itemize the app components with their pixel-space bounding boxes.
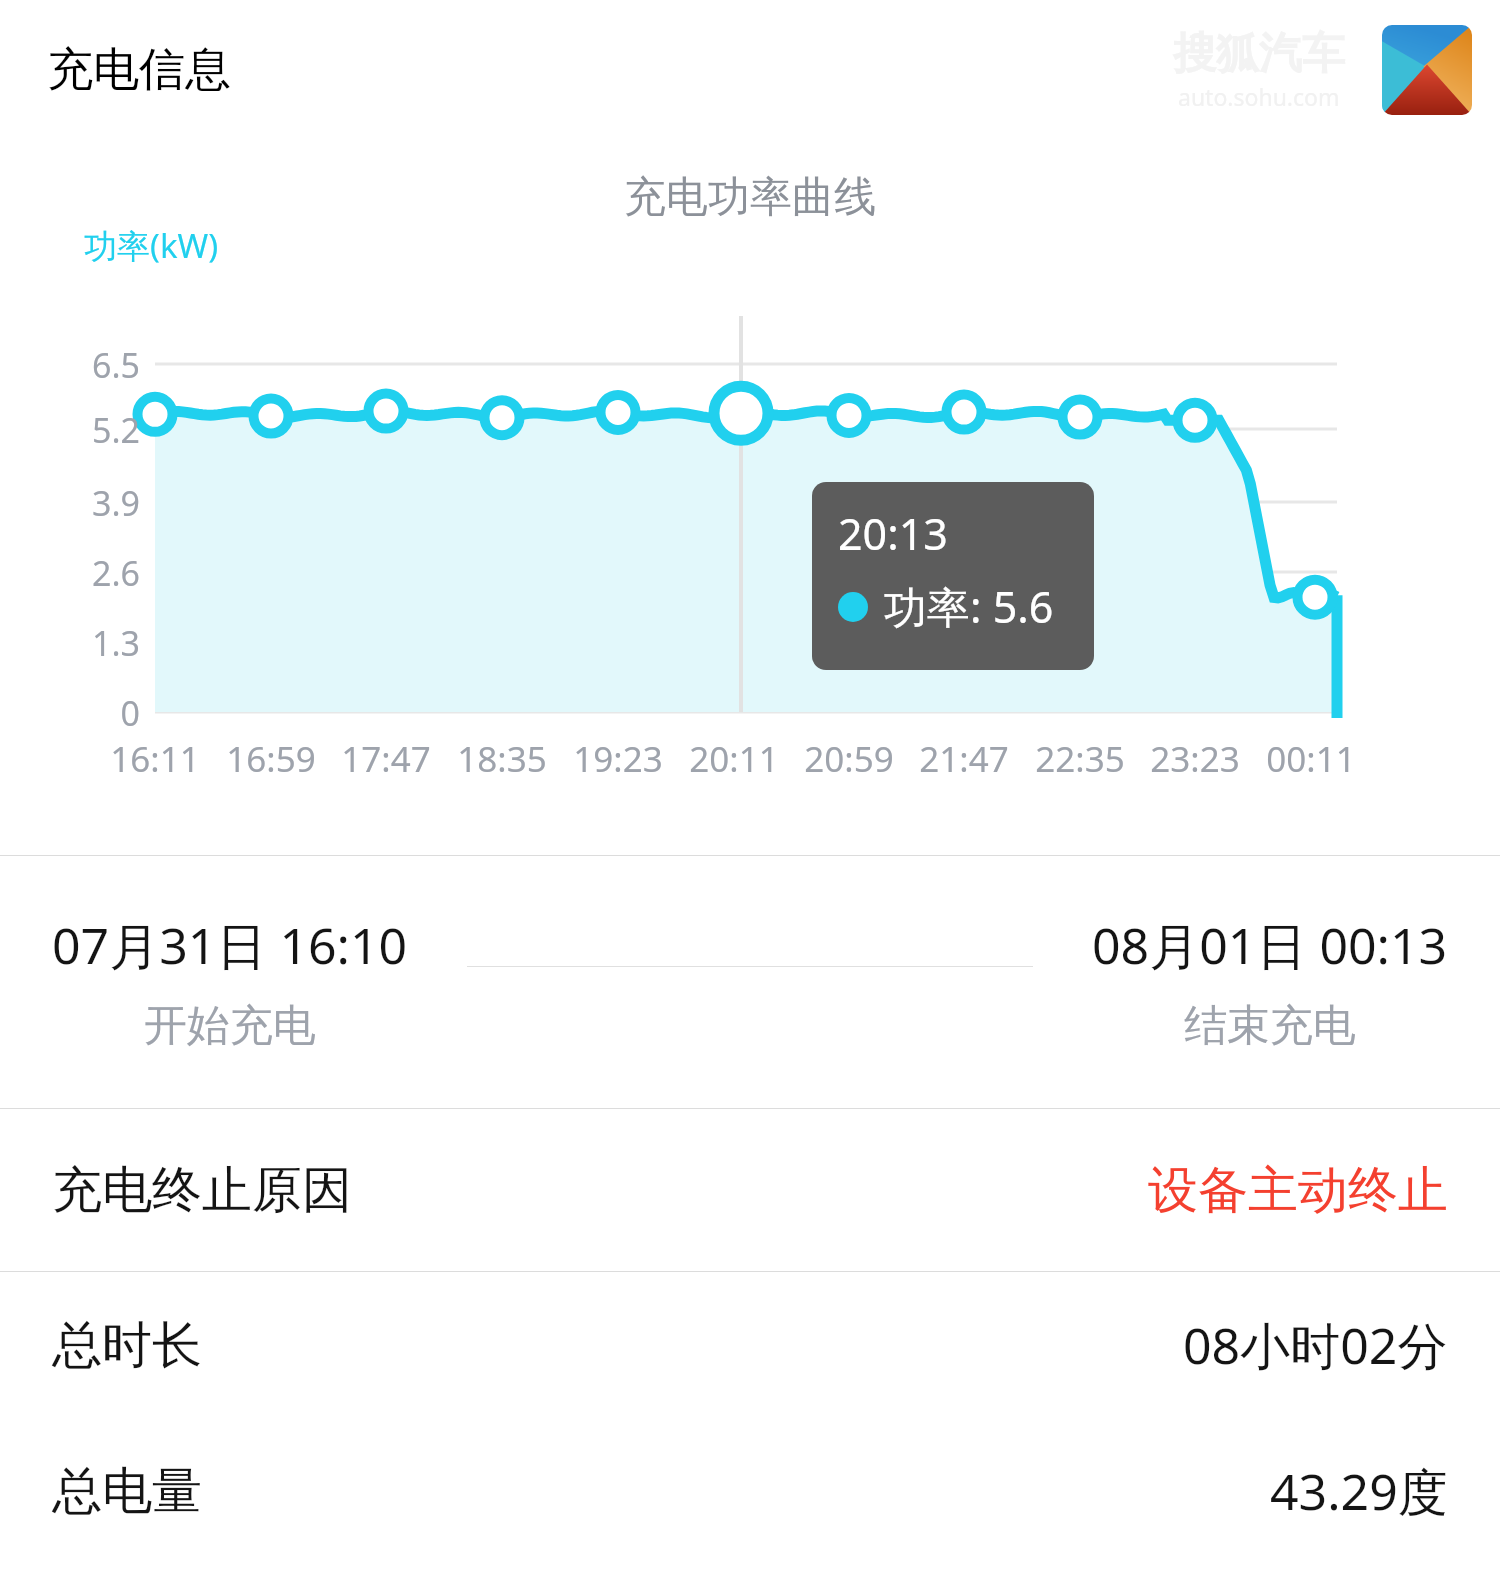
button[interactable]: 总时长	[0, 1272, 1500, 1418]
staticText: 功率(kW)	[84, 223, 219, 268]
staticText: auto.sohu.com	[1178, 81, 1340, 112]
staticText: 20:59	[789, 735, 909, 783]
staticText: 17:47	[326, 735, 446, 783]
staticText: 20:13	[838, 504, 948, 563]
button[interactable]: Sohu Auto logo	[1382, 25, 1472, 115]
button[interactable]: 07月31日 16:10	[0, 856, 1500, 1108]
staticText: 功率: 5.6	[884, 577, 1054, 636]
staticText: 3.9	[40, 480, 140, 526]
staticText: 0	[40, 690, 140, 736]
staticText: 22:35	[1020, 735, 1140, 783]
staticText: 20:11	[674, 735, 794, 783]
button[interactable]: 充电终止原因	[0, 1109, 1500, 1271]
staticText: 16:59	[211, 735, 331, 783]
staticText: 5.2	[40, 407, 140, 453]
staticText: 充电终止原因	[52, 1159, 352, 1222]
staticText: 充电信息	[47, 41, 231, 99]
staticText: 总时长	[52, 1314, 202, 1377]
staticText: 充电功率曲线	[624, 171, 876, 224]
staticText: 2.6	[40, 550, 140, 596]
staticText: 18:35	[442, 735, 562, 783]
staticText: 07月31日 16:10	[52, 911, 408, 979]
staticText: 设备主动终止	[1148, 1159, 1448, 1222]
staticText: 08月01日 00:13	[1092, 911, 1448, 979]
button[interactable]: 总电量	[0, 1418, 1500, 1564]
staticText: 总电量	[52, 1460, 202, 1523]
staticText: 21:47	[904, 735, 1024, 783]
staticText: 00:11	[1251, 735, 1371, 783]
staticText: 43.29度	[1270, 1457, 1448, 1525]
staticText: 08小时02分	[1183, 1311, 1448, 1379]
staticText: 开始充电	[144, 999, 316, 1053]
staticText: 23:23	[1135, 735, 1255, 783]
staticText: 6.5	[40, 342, 140, 388]
staticText: 搜狐汽车	[1173, 27, 1345, 81]
button[interactable]: 20:13	[812, 482, 1094, 670]
staticText: 19:23	[558, 735, 678, 783]
staticText: 结束充电	[1184, 999, 1356, 1053]
staticText: 16:11	[95, 735, 215, 783]
staticText: 1.3	[40, 620, 140, 666]
